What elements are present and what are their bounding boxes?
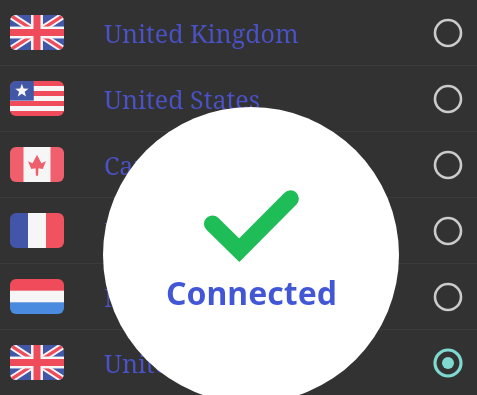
button[interactable]: Canada [0, 132, 477, 197]
button[interactable]: Select Canada [419, 136, 477, 194]
button[interactable]: Select Netherlands [419, 268, 477, 326]
button[interactable]: Select United Kingdom [419, 4, 477, 62]
staticText: United States [104, 82, 419, 116]
button[interactable]: United States [0, 66, 477, 131]
button[interactable]: Netherlands [0, 264, 477, 329]
staticText: Netherlands [104, 280, 419, 314]
button[interactable]: Select France [419, 202, 477, 260]
staticText: Connected [166, 271, 337, 315]
staticText: United Kingdom [104, 16, 419, 50]
button[interactable]: United Kingdom [0, 0, 477, 65]
button[interactable]: United Kingdom 2 [0, 330, 477, 395]
button[interactable]: Selected [419, 334, 477, 392]
button[interactable]: Select United States [419, 70, 477, 128]
staticText: United Kingdom 2 [104, 346, 419, 380]
staticText: Canada [104, 148, 419, 182]
staticText: France [104, 214, 419, 248]
button[interactable]: France [0, 198, 477, 263]
